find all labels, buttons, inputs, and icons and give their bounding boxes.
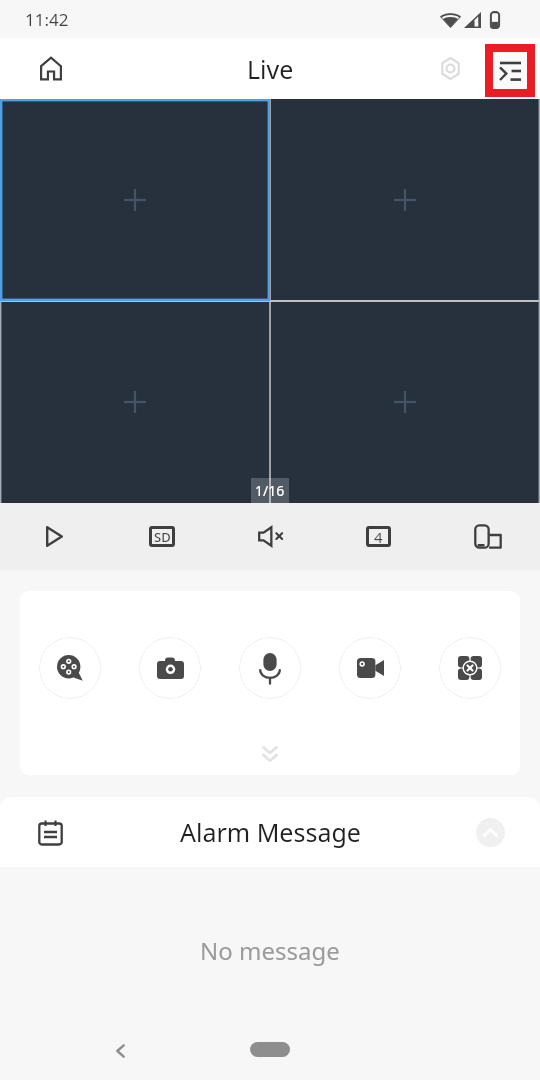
button[interactable]: Play [0,503,108,570]
button[interactable]: Record [339,637,401,699]
button[interactable]: Device list [493,52,527,89]
staticText: 1/16 [255,481,285,500]
button[interactable]: Split 4 [324,503,432,570]
button[interactable]: Home gesture bar [250,1042,290,1057]
button[interactable]: Stream quality SD [108,503,216,570]
staticText: SD [154,528,171,546]
button[interactable]: Snapshot [139,637,201,699]
button[interactable]: Home [28,46,73,91]
staticText: Live [247,52,294,86]
button[interactable]: Rotate screen [432,503,540,570]
button[interactable]: PTZ control [39,637,101,699]
button[interactable]: Alarm log [30,812,70,852]
button[interactable]: More actions [250,735,290,773]
button[interactable]: Talk [239,637,301,699]
button[interactable]: Collapse alarm messages [476,818,505,847]
button[interactable]: Back [100,1031,140,1071]
button[interactable]: Unmute [216,503,324,570]
button[interactable]: Settings [428,46,473,91]
staticText: Alarm Message [180,815,361,849]
staticText: 4 [374,527,383,547]
staticText: No message [200,934,340,967]
button[interactable]: Digital zoom [439,637,501,699]
staticText: 11:42 [25,8,69,31]
